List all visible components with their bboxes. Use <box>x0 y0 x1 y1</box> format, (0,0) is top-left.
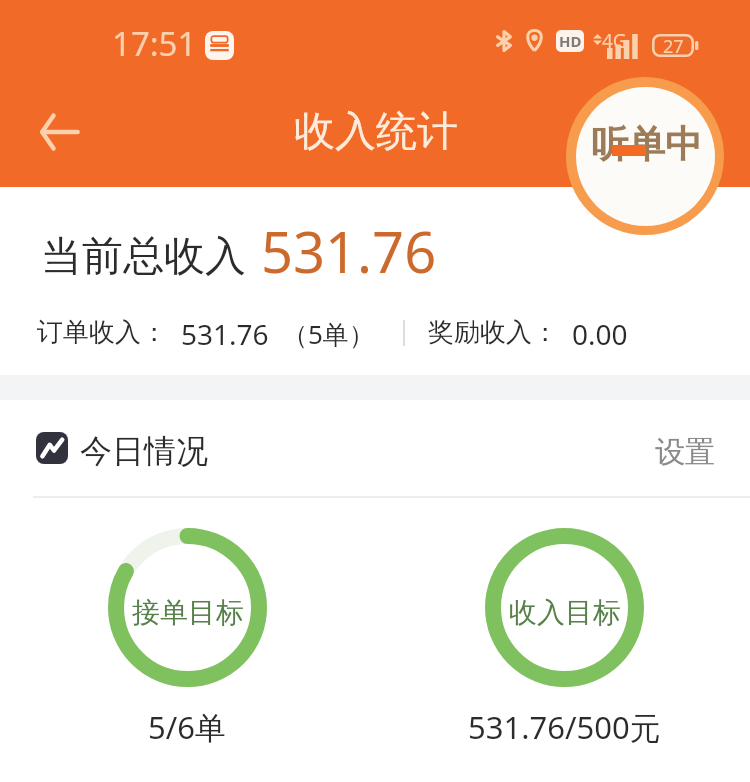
staticText: 订单收入： <box>37 316 167 349</box>
staticText: 17:51 <box>112 21 197 66</box>
staticText: 当前总收入 <box>41 231 246 283</box>
staticText: 5/6单 <box>148 706 226 748</box>
staticText: 0.00 <box>572 315 628 353</box>
staticText: 收入统计 <box>294 106 458 158</box>
button[interactable]: 返回 <box>30 103 88 161</box>
staticText: 4G <box>602 28 627 54</box>
staticText: 531.76 <box>181 315 269 353</box>
staticText: 设置 <box>655 433 715 471</box>
staticText: HD <box>559 31 582 51</box>
staticText: 收入目标 <box>509 595 621 630</box>
button[interactable]: 听单中 <box>566 77 724 235</box>
staticText: 听单中 <box>591 121 702 168</box>
button[interactable]: 设置 <box>646 424 724 480</box>
staticText: 接单目标 <box>132 595 244 630</box>
staticText: 27 <box>663 34 684 57</box>
staticText: （5单） <box>282 316 375 352</box>
staticText: 奖励收入： <box>428 316 558 349</box>
staticText: 531.76/500元 <box>468 706 661 748</box>
staticText: 今日情况 <box>80 431 208 471</box>
staticText: 531.76 <box>261 213 437 289</box>
